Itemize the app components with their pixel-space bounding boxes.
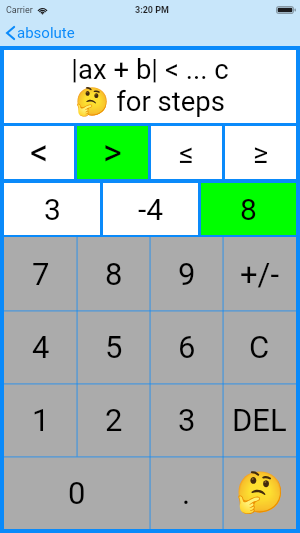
button[interactable]: . (150, 456, 223, 529)
button[interactable]: 8 (77, 237, 150, 310)
button[interactable]: 6 (150, 310, 223, 383)
button[interactable]: 7 (4, 237, 77, 310)
staticText: DEL (232, 402, 287, 438)
button[interactable]: 0 (4, 456, 150, 529)
staticText: 3 (178, 402, 196, 438)
button[interactable]: 3 (150, 383, 223, 456)
staticText: -4 (138, 192, 164, 227)
staticText: 6 (178, 329, 196, 365)
button[interactable]: DEL (223, 383, 296, 456)
staticText: 4 (32, 329, 50, 365)
button[interactable]: < (4, 126, 74, 179)
staticText: 🤔 (235, 469, 285, 516)
button[interactable]: 9 (150, 237, 223, 310)
button[interactable]: 🤔 (223, 456, 296, 529)
button[interactable]: +/- (223, 237, 296, 310)
staticText: > (103, 132, 122, 174)
staticText: 7 (32, 256, 50, 292)
staticText: 9 (178, 256, 196, 292)
staticText: 8 (240, 192, 257, 227)
button[interactable]: absolute (0, 21, 85, 45)
staticText: 8 (105, 256, 123, 292)
button[interactable]: 3 (4, 183, 100, 235)
staticText: 2 (105, 402, 123, 438)
staticText: . (182, 475, 191, 511)
staticText: absolute (17, 24, 75, 42)
button[interactable]: ≥ (225, 126, 296, 179)
staticText: ≤ (179, 136, 194, 170)
button[interactable]: 2 (77, 383, 150, 456)
staticText: C (249, 329, 270, 365)
staticText: Carrier (6, 5, 33, 16)
button[interactable]: 4 (4, 310, 77, 383)
staticText: +/- (240, 256, 279, 292)
staticText: 5 (105, 329, 123, 365)
staticText: < (30, 132, 49, 174)
button[interactable]: C (223, 310, 296, 383)
staticText: 1 (32, 402, 50, 438)
staticText: |ax + b| < ... c (71, 53, 229, 85)
staticText: 3 (44, 192, 61, 227)
staticText: 🤔 for steps (75, 85, 225, 117)
button[interactable]: -4 (103, 183, 198, 235)
button[interactable]: 8 (201, 183, 296, 235)
staticText: ≥ (253, 136, 269, 170)
button[interactable]: ≤ (151, 126, 222, 179)
button[interactable]: > (77, 126, 148, 179)
staticText: 3:20 PM (135, 5, 169, 16)
button[interactable]: 1 (4, 383, 77, 456)
staticText: 0 (68, 475, 86, 511)
button[interactable]: 5 (77, 310, 150, 383)
